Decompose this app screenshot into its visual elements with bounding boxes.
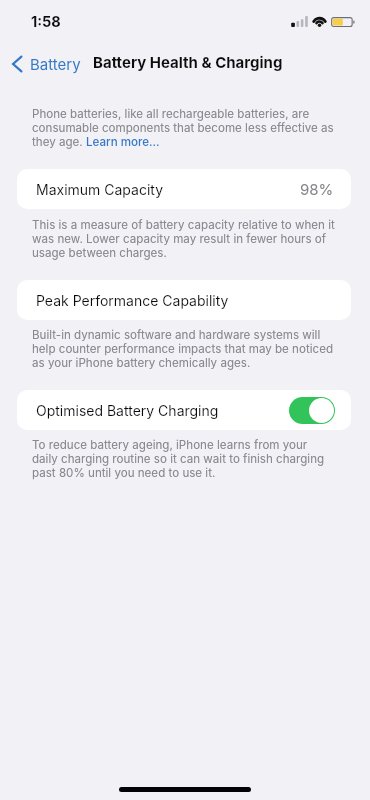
staticText: To reduce battery ageing, iPhone learns … [32,438,336,480]
staticText: Built-in dynamic software and hardware s… [32,328,336,370]
staticText: Optimised Battery Charging [36,402,219,419]
button[interactable]: Optimised Battery Charging [17,390,351,430]
staticText: 98% [300,180,334,198]
button[interactable]: Peak Performance Capability [17,280,351,320]
staticText: Maximum Capacity [36,181,164,198]
staticText: Battery Health & Charging [93,53,283,71]
button[interactable]: Maximum Capacity [17,169,351,209]
staticText: 1:58 [31,13,61,31]
button[interactable]: Optimised Battery Charging toggle [289,397,335,424]
staticText: This is a measure of battery capacity re… [32,218,336,260]
staticText: Battery [30,55,81,73]
button[interactable]: Battery [0,50,87,78]
staticText: Peak Performance Capability [36,292,229,309]
staticText: Phone batteries, like all rechargeable b… [32,107,336,149]
